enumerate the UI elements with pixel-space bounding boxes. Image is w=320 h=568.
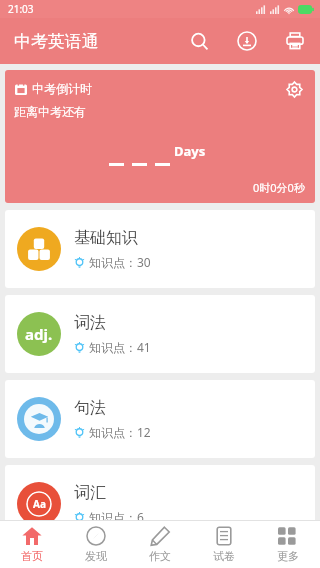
staticText: 发现 bbox=[85, 549, 107, 563]
staticText: 中考倒计时 bbox=[32, 81, 92, 96]
staticText: 句法 bbox=[74, 398, 106, 418]
button[interactable]: 基础知识 bbox=[5, 210, 315, 288]
button[interactable]: Search bbox=[184, 26, 214, 56]
button[interactable]: 试卷 bbox=[192, 521, 256, 568]
staticText: 中考英语通 bbox=[14, 31, 99, 52]
staticText: 知识点：12 bbox=[89, 424, 151, 440]
button[interactable]: 更多 bbox=[256, 521, 320, 568]
button[interactable]: adj. bbox=[5, 295, 315, 373]
staticText: 试卷 bbox=[213, 549, 235, 563]
staticText: 距离中考还有 bbox=[14, 104, 86, 119]
staticText: 知识点：41 bbox=[89, 339, 151, 355]
button[interactable]: Settings bbox=[282, 77, 306, 101]
staticText: 词法 bbox=[74, 313, 106, 333]
staticText: 基础知识 bbox=[74, 228, 138, 248]
staticText: 0时0分0秒 bbox=[253, 180, 305, 195]
button[interactable]: Download bbox=[232, 26, 262, 56]
staticText: 知识点：30 bbox=[89, 254, 151, 270]
button[interactable]: 发现 bbox=[64, 521, 128, 568]
button[interactable]: 中考倒计时 bbox=[5, 70, 315, 203]
staticText: adj. bbox=[25, 324, 53, 344]
staticText: 更多 bbox=[277, 549, 299, 563]
button[interactable]: Print bbox=[280, 26, 310, 56]
staticText: Days bbox=[174, 142, 206, 160]
staticText: 作文 bbox=[149, 549, 171, 563]
button[interactable]: Aa bbox=[5, 465, 315, 543]
staticText: 首页 bbox=[21, 549, 43, 563]
staticText: Aa bbox=[33, 497, 46, 511]
button[interactable]: 句法 bbox=[5, 380, 315, 458]
button[interactable]: 首页 bbox=[0, 521, 64, 568]
button[interactable]: 作文 bbox=[128, 521, 192, 568]
staticText: 知识点：6 bbox=[89, 509, 144, 525]
staticText: 词汇 bbox=[74, 483, 106, 503]
staticText: 21:03 bbox=[8, 2, 34, 16]
